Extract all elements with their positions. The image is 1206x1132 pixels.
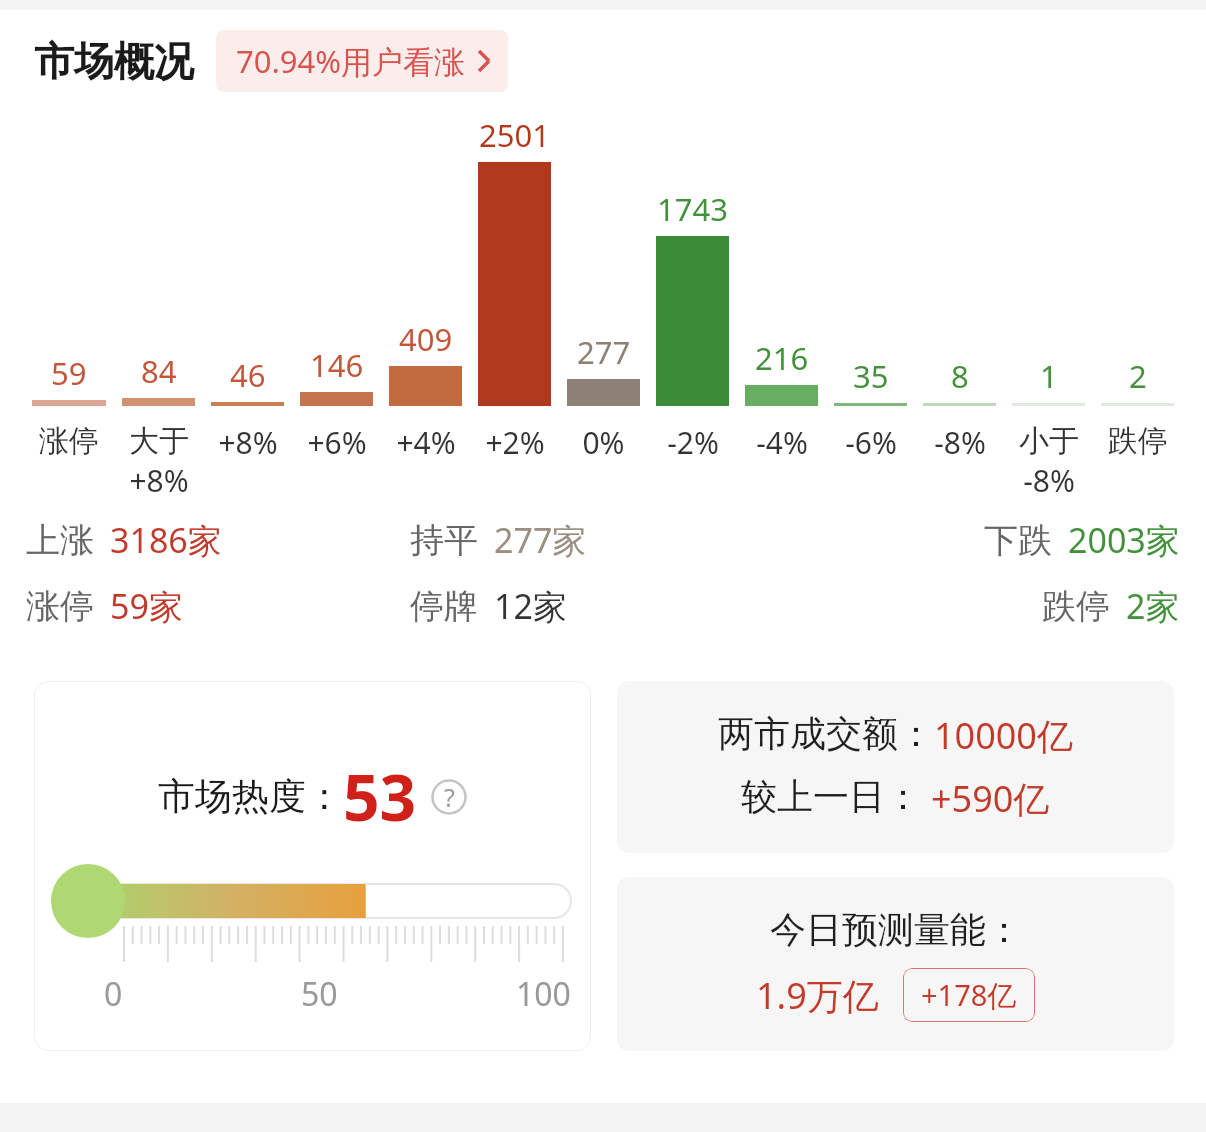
staticText: 46: [230, 354, 266, 396]
staticText: 12家: [494, 583, 567, 629]
staticText: 市场概况: [34, 36, 194, 86]
staticText: 今日预测量能：: [770, 907, 1022, 952]
staticText: 市场热度：: [158, 773, 343, 820]
staticText: 2家: [1126, 583, 1180, 629]
button[interactable]: 今日预测量能：: [617, 877, 1174, 1051]
staticText: 146: [310, 344, 364, 386]
staticText: 1: [1040, 355, 1058, 397]
button[interactable]: 市场热度：: [34, 681, 591, 1051]
staticText: 小于: [1019, 422, 1079, 460]
staticText: +8%: [218, 422, 278, 463]
staticText: 59: [51, 352, 87, 394]
button[interactable]: 市场热度说明: [431, 779, 467, 815]
staticText: 两市成交额：: [718, 711, 934, 756]
staticText: 跌停: [1042, 585, 1110, 628]
staticText: +6%: [307, 422, 367, 463]
staticText: 跌停: [1108, 422, 1168, 460]
staticText: +4%: [396, 422, 456, 463]
staticText: 上涨: [26, 519, 94, 562]
staticText: 2501: [479, 114, 550, 156]
staticText: 409: [399, 318, 453, 360]
staticText: 涨停: [39, 422, 99, 460]
staticText: 下跌: [984, 519, 1052, 562]
staticText: 84: [141, 350, 177, 392]
staticText: 3186家: [110, 517, 222, 563]
staticText: 0: [104, 972, 123, 1016]
staticText: -8%: [1023, 460, 1075, 501]
staticText: 0%: [582, 422, 625, 463]
staticText: 1743: [657, 188, 728, 230]
staticText: 70.94%用户看涨: [236, 40, 465, 82]
staticText: 216: [755, 337, 809, 379]
staticText: 1.9万亿: [756, 971, 879, 1020]
staticText: -2%: [667, 422, 719, 463]
staticText: 53: [343, 753, 417, 840]
staticText: +8%: [129, 460, 189, 501]
button[interactable]: 70.94%用户看涨: [216, 30, 508, 92]
staticText: +178亿: [921, 975, 1017, 1015]
staticText: -8%: [934, 422, 986, 463]
staticText: -4%: [756, 422, 808, 463]
staticText: -6%: [845, 422, 897, 463]
staticText: 涨停: [26, 585, 94, 628]
staticText: 大于: [129, 422, 189, 460]
staticText: 2003家: [1068, 517, 1180, 563]
staticText: 持平: [410, 519, 478, 562]
staticText: 59家: [110, 583, 183, 629]
staticText: 277家: [494, 517, 587, 563]
staticText: 2: [1129, 355, 1147, 397]
button[interactable]: 两市成交额：: [617, 681, 1174, 853]
staticText: 50: [301, 972, 338, 1016]
staticText: 8: [951, 355, 969, 397]
staticText: 100: [516, 972, 571, 1016]
staticText: 277: [577, 331, 631, 373]
staticText: 35: [853, 355, 889, 397]
staticText: ?: [444, 780, 455, 814]
staticText: 10000亿: [934, 711, 1073, 760]
staticText: +590亿: [931, 774, 1050, 823]
staticText: +2%: [485, 422, 545, 463]
staticText: 停牌: [410, 585, 478, 628]
staticText: 较上一日：: [741, 774, 921, 819]
